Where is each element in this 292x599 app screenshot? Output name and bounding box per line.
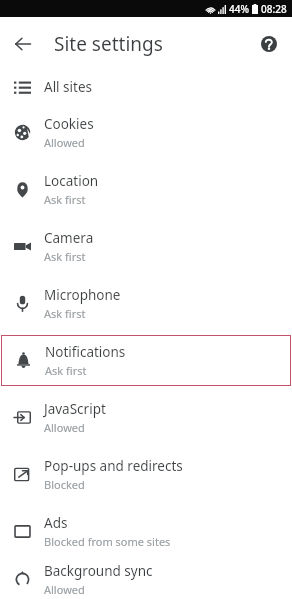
staticText: Allowed [44, 420, 85, 435]
button[interactable]: Microphone [0, 275, 292, 332]
button[interactable]: Pop-ups and redirects [0, 446, 292, 503]
button[interactable]: Notifications [1, 335, 291, 386]
staticText: Ask first [44, 306, 86, 321]
staticText: Blocked from some sites [44, 534, 171, 549]
staticText: Microphone [44, 286, 121, 304]
button[interactable]: Background sync [0, 560, 292, 599]
button[interactable]: Back [5, 26, 41, 62]
staticText: All sites [44, 78, 93, 96]
staticText: Blocked [44, 477, 85, 492]
staticText: Ask first [45, 363, 87, 378]
staticText: Cookies [44, 115, 94, 133]
button[interactable]: JavaScript [0, 389, 292, 446]
staticText: Pop-ups and redirects [44, 457, 183, 475]
staticText: JavaScript [44, 400, 106, 418]
staticText: Site settings [54, 31, 163, 57]
staticText: 44% [229, 2, 249, 16]
staticText: Allowed [44, 582, 85, 597]
staticText: Location [44, 172, 99, 190]
staticText: Notifications [45, 343, 126, 361]
button[interactable]: Ads [0, 503, 292, 560]
staticText: 08:28 [261, 2, 287, 16]
staticText: Ads [44, 514, 68, 532]
button[interactable]: Cookies [0, 104, 292, 161]
button[interactable]: Camera [0, 218, 292, 275]
button[interactable]: All sites [0, 70, 292, 104]
button[interactable]: Location [0, 161, 292, 218]
staticText: Allowed [44, 135, 85, 150]
staticText: Ask first [44, 249, 86, 264]
staticText: Ask first [44, 192, 86, 207]
staticText: Camera [44, 229, 94, 247]
staticText: Background sync [44, 562, 153, 580]
button[interactable]: Help [253, 28, 285, 60]
